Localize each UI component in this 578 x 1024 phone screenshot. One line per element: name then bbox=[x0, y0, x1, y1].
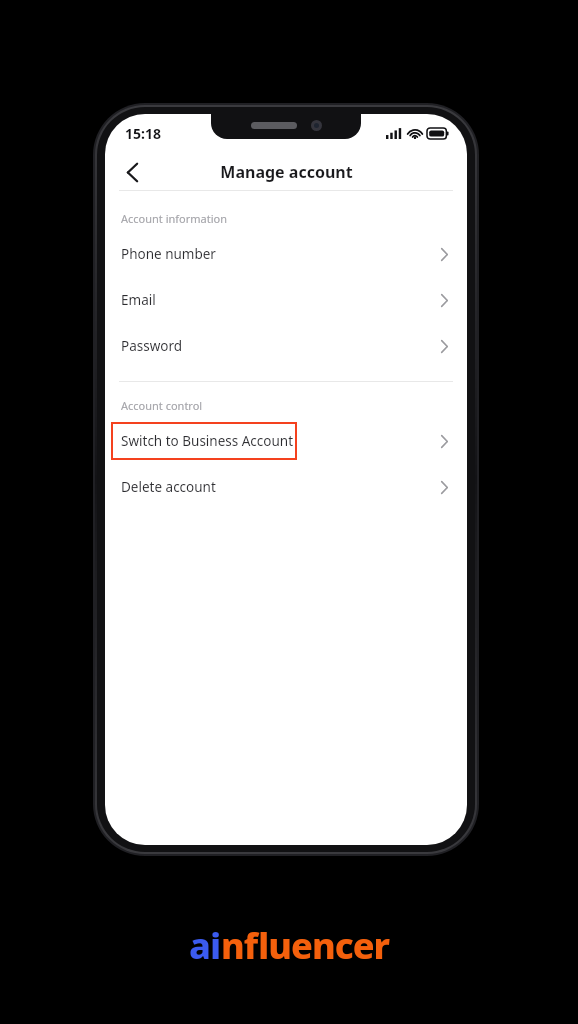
button[interactable]: Phone number bbox=[105, 231, 467, 277]
button[interactable]: Delete account bbox=[105, 464, 467, 510]
button[interactable]: Password bbox=[105, 323, 467, 369]
staticText: Account control bbox=[121, 398, 203, 413]
staticText: a bbox=[189, 921, 210, 970]
button[interactable]: Switch to Business Account bbox=[105, 418, 467, 464]
staticText: Switch to Business Account bbox=[121, 432, 294, 450]
button[interactable]: Email bbox=[105, 277, 467, 323]
staticText: Manage account bbox=[220, 161, 353, 183]
staticText: Password bbox=[121, 337, 183, 355]
staticText: Phone number bbox=[121, 245, 216, 263]
staticText: Email bbox=[121, 291, 156, 309]
staticText: nfluencer bbox=[221, 921, 389, 970]
staticText: Delete account bbox=[121, 478, 216, 496]
staticText: 15:18 bbox=[125, 124, 161, 143]
staticText: i bbox=[210, 921, 221, 970]
button[interactable]: Back bbox=[113, 153, 151, 191]
staticText: Account information bbox=[121, 211, 228, 226]
